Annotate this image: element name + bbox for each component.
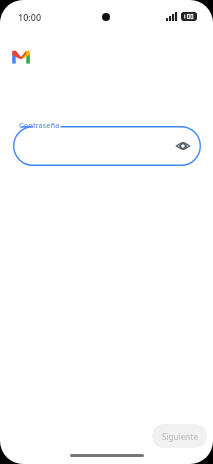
staticText: Siguiente xyxy=(162,431,198,442)
button[interactable]: Mostrar contraseña xyxy=(13,126,201,166)
staticText: Contraseña xyxy=(19,120,60,130)
staticText: 10:00 xyxy=(18,11,42,23)
button[interactable]: Mostrar contraseña xyxy=(171,134,195,158)
button[interactable]: Siguiente xyxy=(152,424,207,448)
